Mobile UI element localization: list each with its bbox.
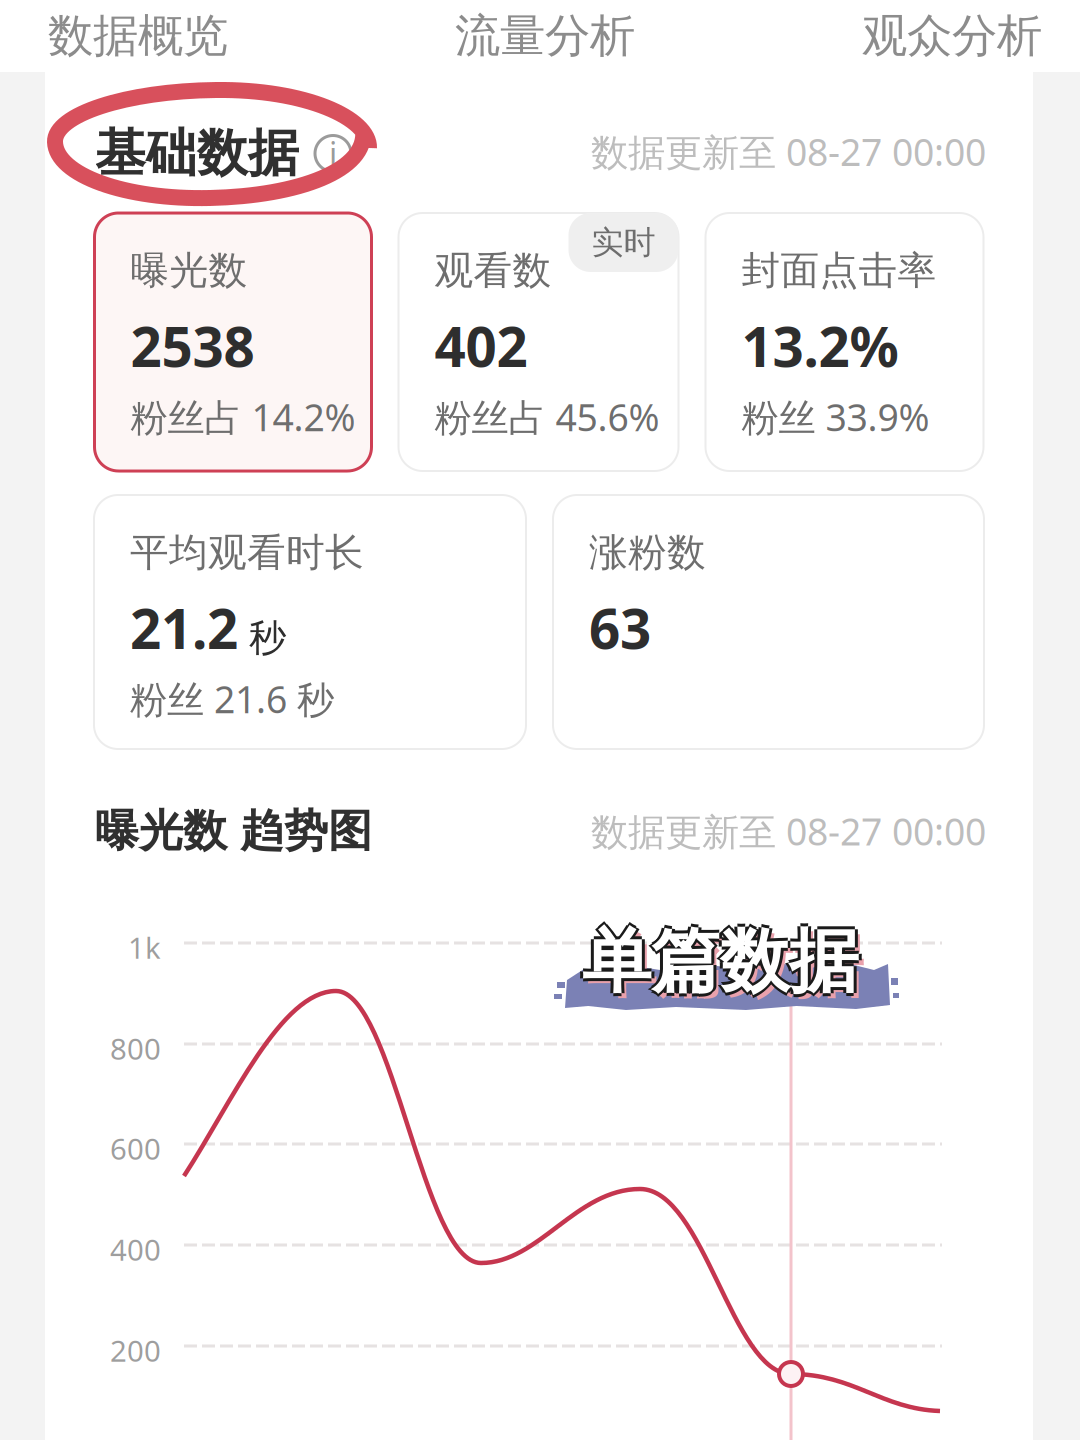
button[interactable]: 实时 [398, 213, 678, 471]
staticText: 数据更新至 08-27 00:00 [591, 806, 986, 856]
staticText: 粉丝 33.9% [741, 392, 929, 442]
staticText: 平均观看时长 [130, 529, 364, 576]
button[interactable]: 平均观看时长 [94, 495, 526, 749]
staticText: 400 [110, 1230, 161, 1269]
staticText: 单篇数据 [579, 919, 855, 1004]
button[interactable]: 封面点击率 [705, 213, 983, 471]
button[interactable]: 数据概览 [48, 0, 228, 72]
button[interactable]: 曝光数 [94, 213, 371, 471]
staticText: 800 [110, 1029, 161, 1068]
staticText: 秒 [249, 615, 286, 661]
staticText: 402 [434, 309, 527, 382]
staticText: 粉丝 21.6 秒 [130, 674, 334, 724]
button[interactable]: 数据说明 [311, 131, 355, 175]
staticText: 数据概览 [48, 8, 228, 64]
staticText: 流量分析 [455, 8, 635, 64]
staticText: 63 [589, 591, 651, 664]
staticText: 曝光数 趋势图 [95, 804, 372, 858]
staticText: 基础数据 [95, 122, 299, 185]
button[interactable]: 观众分析 [862, 0, 1042, 72]
staticText: 粉丝占 14.2% [130, 392, 355, 442]
staticText: 单篇数据 [582, 922, 858, 1007]
button[interactable]: 流量分析 [455, 0, 635, 72]
staticText: 单篇数据 [582, 919, 858, 1004]
staticText: 2538 [130, 309, 254, 382]
staticText: 21.2 [130, 591, 238, 664]
staticText: 封面点击率 [741, 247, 936, 294]
staticText: 观看数 [434, 247, 551, 294]
staticText: 观众分析 [862, 8, 1042, 64]
staticText: 600 [110, 1129, 161, 1168]
staticText: 200 [110, 1331, 161, 1370]
staticText: 1k [128, 928, 161, 967]
staticText: 涨粉数 [589, 529, 706, 576]
staticText: 单篇数据 [582, 916, 858, 1001]
button[interactable]: 涨粉数 [553, 495, 984, 749]
staticText: 曝光数 [130, 247, 247, 294]
staticText: i [329, 132, 337, 175]
staticText: 粉丝占 45.6% [434, 392, 659, 442]
staticText: 13.2% [741, 309, 898, 382]
staticText: 单篇数据 [585, 919, 861, 1004]
staticText: 实时 [591, 223, 655, 262]
staticText: 数据更新至 08-27 00:00 [591, 127, 986, 176]
staticText: 单篇数据 [587, 924, 863, 1009]
